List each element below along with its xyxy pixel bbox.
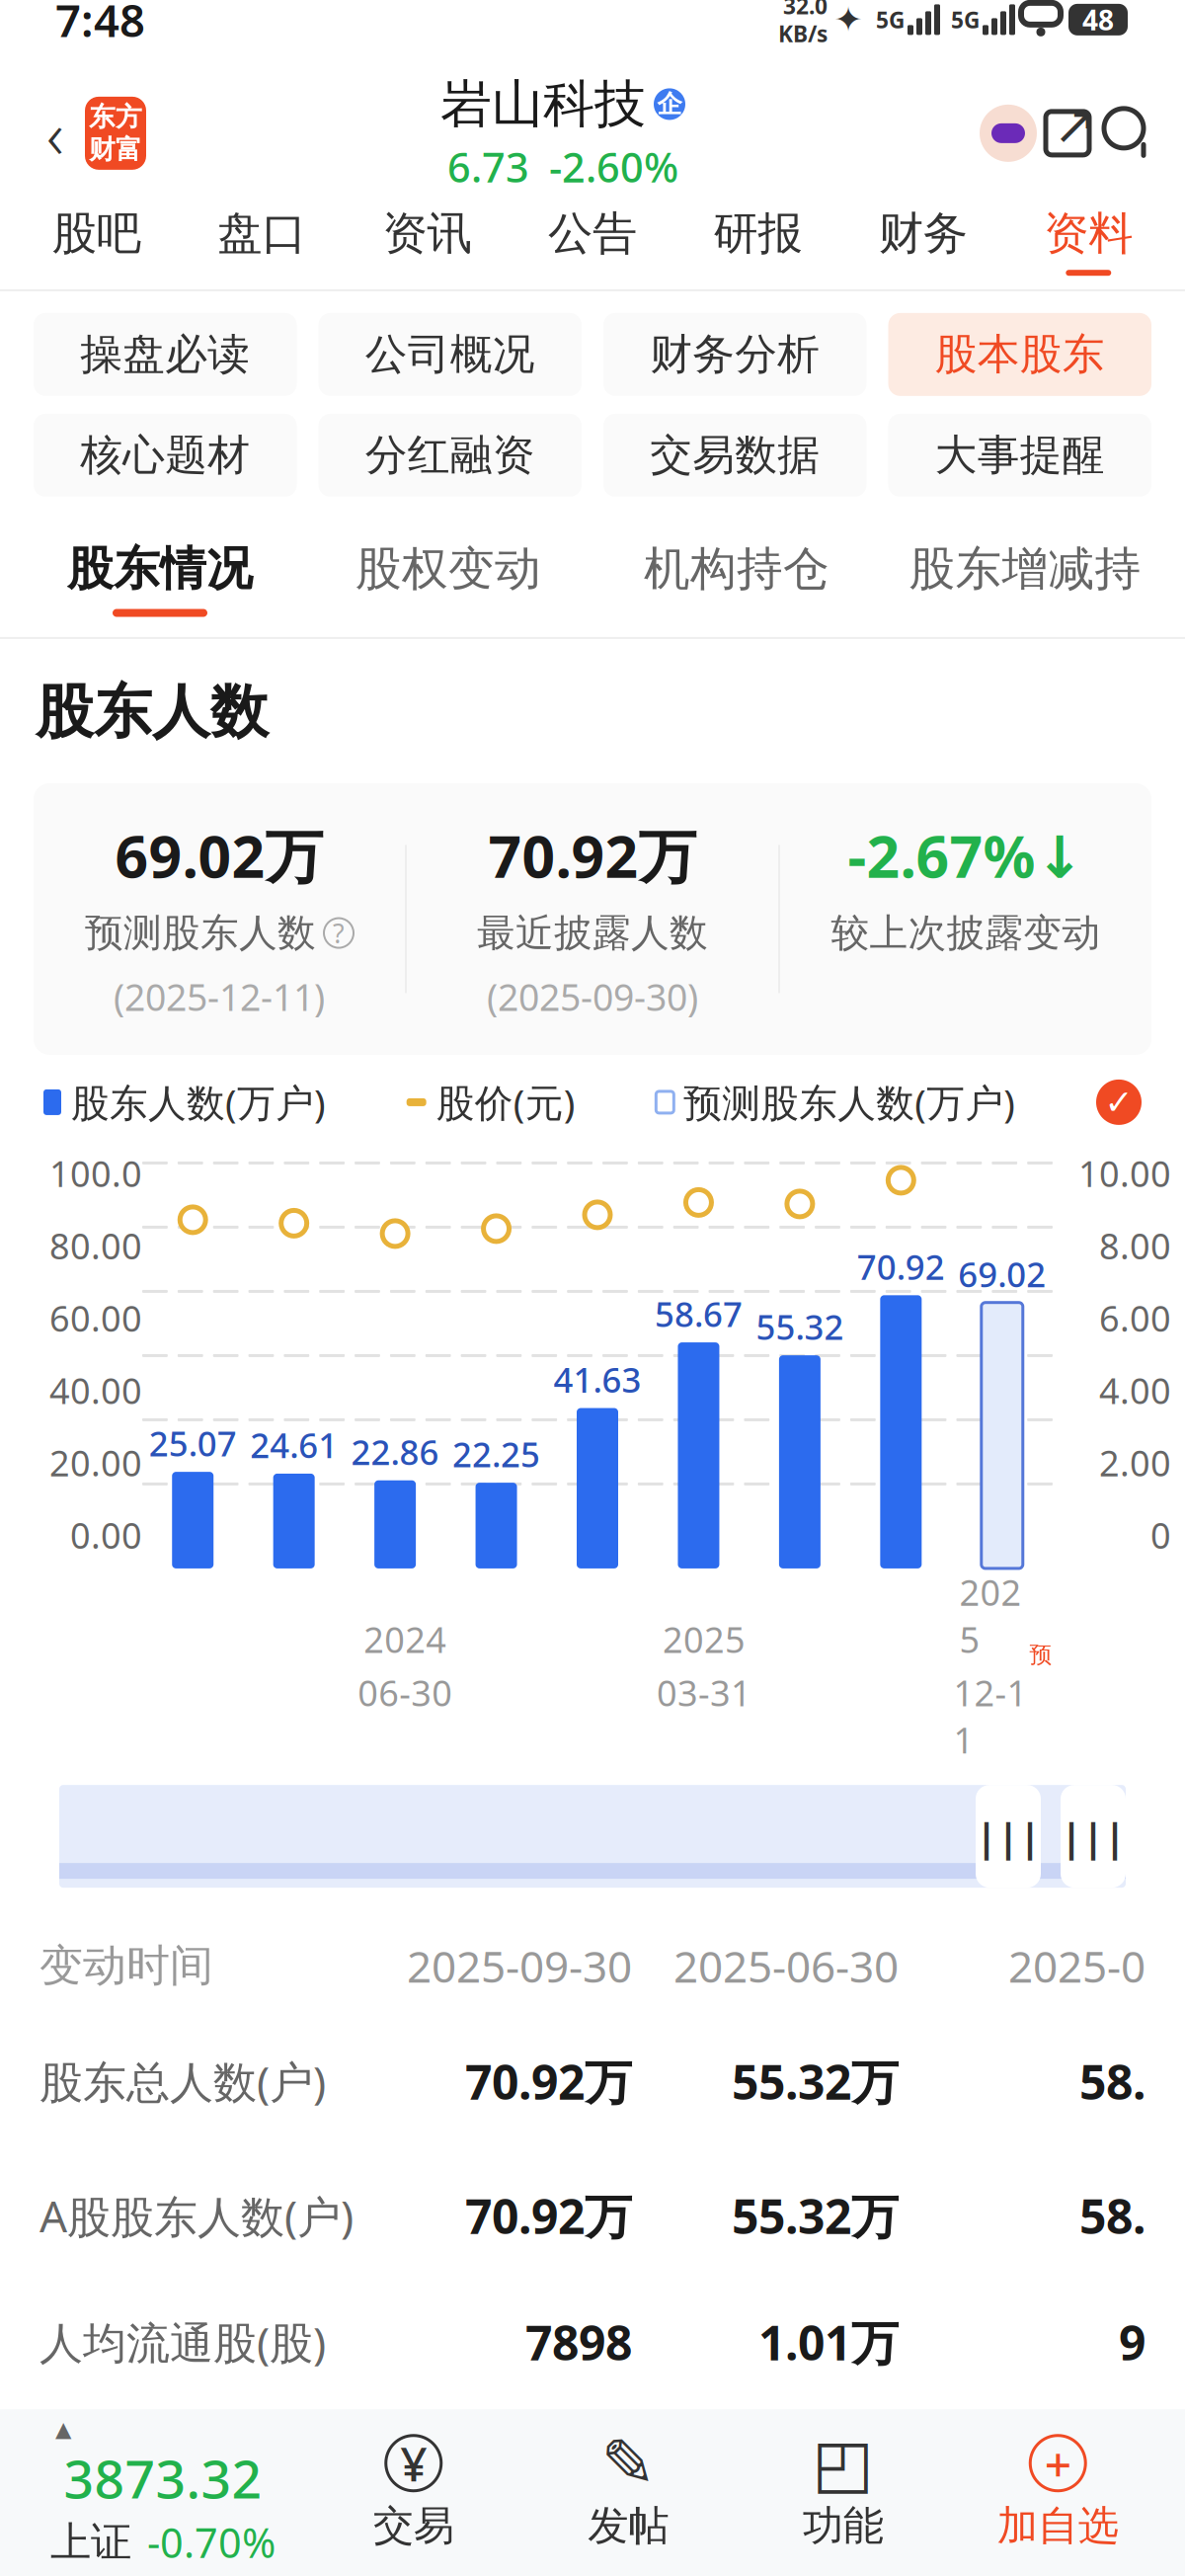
staticText: 2025 xyxy=(959,1568,1022,1663)
staticText: 核心题材 xyxy=(80,429,250,481)
staticText: ||| xyxy=(1061,1810,1126,1863)
staticText: 股东总人数(户) xyxy=(39,2052,326,2110)
button[interactable]: 公告 xyxy=(510,193,675,289)
staticText: ‹ xyxy=(46,89,64,177)
button[interactable]: 研报 xyxy=(675,193,840,289)
button[interactable]: 确认 xyxy=(1096,1079,1142,1125)
button[interactable]: ✎ xyxy=(521,2435,736,2551)
staticText: 7:48 xyxy=(55,0,145,49)
staticText: -0.70% xyxy=(147,2515,276,2569)
staticText: 变动时间 xyxy=(39,1939,213,1992)
staticText: 东方 xyxy=(89,101,142,133)
staticText: ✓ xyxy=(1105,1083,1133,1122)
button[interactable]: 返回 xyxy=(26,86,85,181)
staticText: 24.61 xyxy=(250,1422,338,1468)
button[interactable]: 公司概况 xyxy=(318,313,582,396)
staticText: 最近披露人数 xyxy=(477,910,708,956)
staticText: 55.32万 xyxy=(732,2050,899,2113)
button[interactable]: 财务 xyxy=(840,193,1006,289)
staticText: 41.63 xyxy=(553,1357,641,1402)
staticText: 0.00 xyxy=(70,1511,142,1559)
staticText: 7898 xyxy=(525,2311,632,2374)
button[interactable]: 搜索 xyxy=(1098,99,1159,168)
staticText: KB/s xyxy=(778,19,828,48)
staticText: -2.60% xyxy=(549,140,678,194)
button[interactable]: 资讯 xyxy=(345,193,510,289)
staticText: 交易数据 xyxy=(650,429,820,481)
staticText: 交易 xyxy=(373,2501,454,2551)
button[interactable]: 东方财富 xyxy=(85,97,146,170)
staticText: 预 xyxy=(1030,1641,1052,1669)
staticText: 40.00 xyxy=(49,1367,142,1414)
staticText: 69.02万 xyxy=(115,817,323,894)
staticText: 盘口 xyxy=(217,206,306,261)
staticText: 加自选 xyxy=(997,2501,1119,2551)
staticText: 2025 xyxy=(663,1616,745,1663)
staticText: 25.07 xyxy=(149,1420,237,1466)
staticText: 2025-0 xyxy=(1008,1937,1145,1995)
button[interactable]: ◰ xyxy=(736,2435,950,2551)
staticText: 70.92万 xyxy=(465,2050,632,2113)
button[interactable]: 机构持仓 xyxy=(592,520,881,637)
staticText: 财务分析 xyxy=(650,329,820,380)
staticText: 80.00 xyxy=(49,1222,142,1269)
button[interactable]: 股东情况 xyxy=(16,520,304,637)
staticText: 8.00 xyxy=(1099,1222,1171,1269)
button[interactable]: + xyxy=(950,2435,1165,2551)
button[interactable]: 大事提醒 xyxy=(888,414,1151,497)
staticText: 06-30 xyxy=(358,1669,452,1716)
button[interactable]: 操盘必读 xyxy=(34,313,297,396)
staticText: 5G xyxy=(951,5,980,34)
staticText: 研报 xyxy=(713,206,802,261)
staticText: 58.67 xyxy=(655,1291,743,1336)
staticText: 股东情况 xyxy=(67,540,253,597)
staticText: 22.25 xyxy=(452,1431,540,1477)
button[interactable]: 资料 xyxy=(1006,193,1171,289)
button[interactable]: 交易数据 xyxy=(603,414,867,497)
button[interactable]: 结束滑块 xyxy=(1061,1785,1126,1888)
staticText: 58. xyxy=(1079,2050,1145,2113)
staticText: 股本股东 xyxy=(935,329,1105,380)
staticText: 69.02 xyxy=(958,1251,1046,1297)
staticText: 60.00 xyxy=(49,1294,142,1342)
staticText: 70.92万 xyxy=(488,817,697,894)
button[interactable]: 股东增减持 xyxy=(881,520,1169,637)
staticText: 资料 xyxy=(1044,206,1133,261)
button[interactable]: 股吧 xyxy=(14,193,179,289)
button[interactable]: AI 助手 xyxy=(980,105,1037,162)
staticText: (2025-12-11) xyxy=(114,972,325,1021)
staticText: 22.86 xyxy=(351,1429,439,1474)
staticText: 9 xyxy=(1119,2311,1145,2374)
staticText: 6.73 xyxy=(447,140,529,194)
staticText: 股权变动 xyxy=(355,540,541,597)
staticText: 财富 xyxy=(89,133,142,166)
staticText: 70.92万 xyxy=(465,2184,632,2247)
button[interactable]: 盘口 xyxy=(179,193,344,289)
staticText: ¥ xyxy=(400,2432,427,2495)
staticText: ✦ xyxy=(834,0,863,39)
staticText: ||| xyxy=(976,1810,1041,1863)
staticText: 12-11 xyxy=(954,1669,1028,1763)
staticText: 预测股东人数(万户) xyxy=(684,1077,1015,1127)
button[interactable]: 分享 xyxy=(1037,99,1098,168)
staticText: 功能 xyxy=(803,2501,884,2551)
staticText: -2.67%↓ xyxy=(848,817,1084,894)
button[interactable]: 股本股东 xyxy=(888,313,1151,396)
staticText: 2025-09-30 xyxy=(407,1937,632,1995)
staticText: 5G xyxy=(876,5,905,34)
button[interactable]: 起始滑块 xyxy=(976,1785,1041,1888)
staticText: 人均流通股(股) xyxy=(39,2313,326,2371)
staticText: 公司概况 xyxy=(365,329,535,380)
button[interactable]: 股权变动 xyxy=(304,520,592,637)
staticText: + xyxy=(1045,2432,1071,2495)
staticText: 55.32 xyxy=(756,1304,844,1349)
staticText: A股股东人数(户) xyxy=(39,2187,354,2245)
button[interactable]: ¥ xyxy=(306,2435,521,2551)
staticText: 4.00 xyxy=(1099,1367,1171,1414)
button[interactable]: 分红融资 xyxy=(318,414,582,497)
button[interactable]: 核心题材 xyxy=(34,414,297,497)
button[interactable]: 财务分析 xyxy=(603,313,867,396)
staticText: 2024 xyxy=(364,1616,447,1663)
button[interactable]: 上证指数 xyxy=(20,2417,306,2569)
